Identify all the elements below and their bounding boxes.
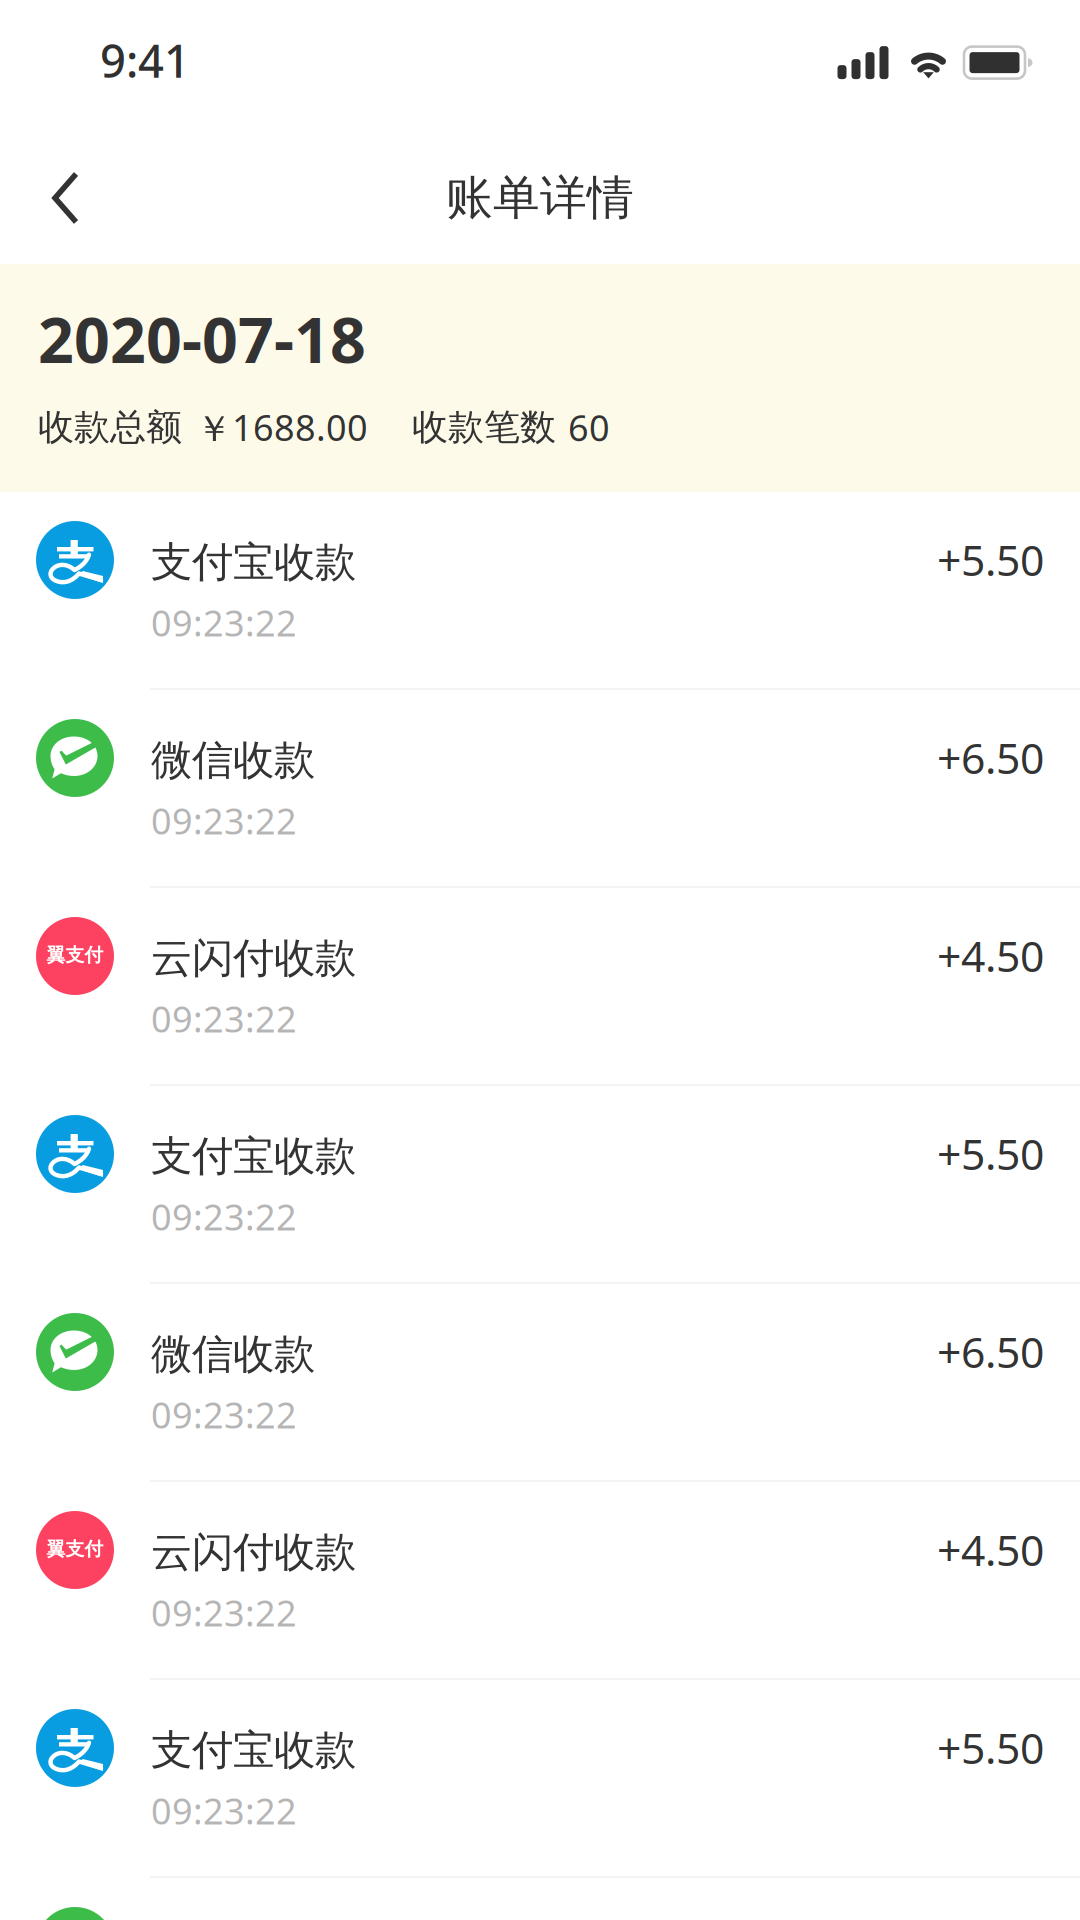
button[interactable]: Back [0,125,109,249]
button[interactable]: 微信收款 [0,1284,1080,1482]
staticText: +5.50 [937,531,1044,588]
staticText: 2020-07-18 [38,297,366,380]
staticText: 支付宝收款 [151,1131,356,1181]
staticText: 09:23:22 [151,1589,297,1636]
button[interactable]: 支付宝收款 [0,1680,1080,1878]
staticText: 微信收款 [151,735,315,785]
staticText: 09:23:22 [151,995,297,1042]
staticText: 9:41 [100,30,190,90]
staticText: 云闪付收款 [151,1527,356,1577]
staticText: 收款总额 [38,405,182,449]
staticText: ￥1688.00 [196,403,368,451]
button[interactable]: 微信收款 [0,690,1080,888]
button[interactable]: 翼支付 [0,1482,1080,1680]
staticText: 支付宝收款 [151,1725,356,1775]
staticText: +5.50 [937,1719,1044,1776]
button[interactable]: 微信收款 [0,1878,1080,1920]
staticText: +4.50 [937,1521,1044,1578]
staticText: +6.50 [937,1323,1044,1380]
staticText: 翼支付 [46,1537,103,1560]
staticText: 09:23:22 [151,1391,297,1438]
staticText: 账单详情 [446,169,634,227]
staticText: 09:23:22 [151,797,297,844]
staticText: 翼支付 [46,943,103,966]
staticText: 云闪付收款 [151,933,356,983]
staticText: 09:23:22 [151,599,297,646]
button[interactable]: 支付宝收款 [0,492,1080,690]
staticText: 09:23:22 [151,1787,297,1834]
staticText: 09:23:22 [151,1193,297,1240]
staticText: +4.50 [937,927,1044,984]
button[interactable]: 支付宝收款 [0,1086,1080,1284]
staticText: +5.50 [937,1125,1044,1182]
staticText: 支付宝收款 [151,537,356,587]
staticText: +6.50 [937,729,1044,786]
button[interactable]: 翼支付 [0,888,1080,1086]
staticText: 收款笔数 [412,405,556,449]
staticText: 60 [568,403,610,451]
staticText: 微信收款 [151,1329,315,1379]
